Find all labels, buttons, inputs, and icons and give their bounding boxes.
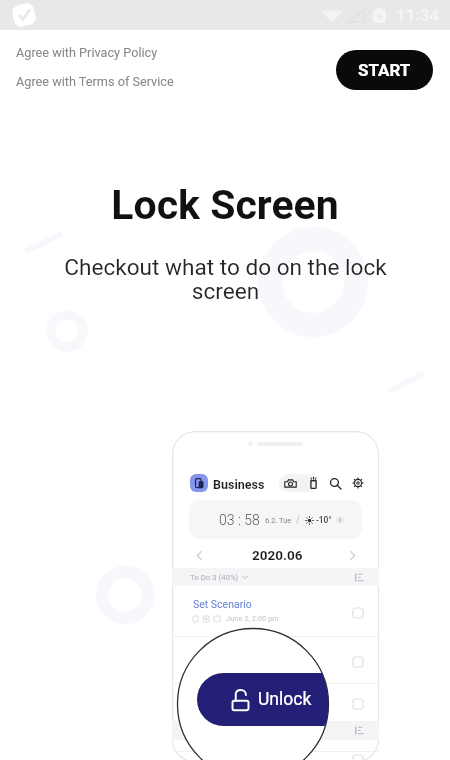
button[interactable]: Search	[329, 477, 342, 490]
button[interactable]: Settings	[352, 477, 364, 489]
staticText: Lock Screen	[111, 181, 339, 229]
staticText: 11:34	[396, 5, 440, 25]
button[interactable]: Camera	[284, 477, 297, 490]
staticText: To Do 3 (40%)	[190, 573, 239, 582]
staticText: Unlock	[258, 689, 312, 710]
staticText: 03 : 58	[219, 512, 260, 528]
staticText: 6.2. Tue	[265, 516, 292, 525]
button[interactable]: Previous month	[192, 548, 206, 562]
button[interactable]: START	[336, 50, 433, 90]
staticText: START	[358, 60, 411, 80]
button[interactable]: Flashlight	[307, 476, 320, 489]
staticText: Agree with Privacy Policy	[16, 45, 158, 60]
staticText: Business	[213, 477, 265, 492]
staticText: Checkout what to do on the lock screen	[59, 254, 392, 305]
staticText: -10°	[316, 515, 332, 525]
staticText: Agree with Terms of Service	[16, 74, 174, 89]
button[interactable]: Unlock	[197, 673, 349, 726]
staticText: /	[296, 514, 301, 526]
staticText: Set Scenario	[193, 598, 252, 610]
staticText: 2020.06	[252, 547, 303, 563]
button[interactable]: Next month	[345, 548, 359, 562]
staticText: June 2, 2:00 pm	[226, 614, 279, 623]
